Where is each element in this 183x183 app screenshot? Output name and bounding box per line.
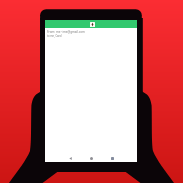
button[interactable]: Attachment <box>45 20 137 28</box>
staticText: to me, Carol <box>47 34 62 38</box>
button[interactable]: Back <box>68 156 72 160</box>
staticText: From: me <me@gmail.com <box>47 30 85 34</box>
button[interactable]: Recents <box>110 156 114 160</box>
other: Attachment <box>90 22 95 27</box>
button[interactable]: Home <box>89 156 93 160</box>
